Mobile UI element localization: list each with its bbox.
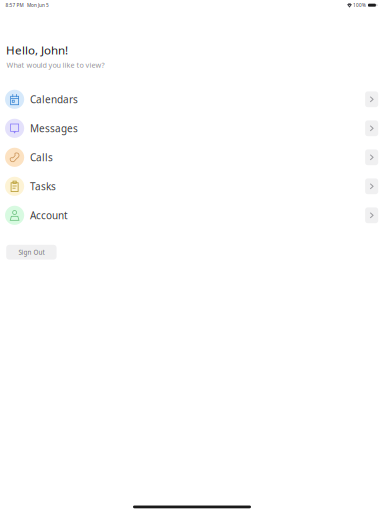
button[interactable]: Account [0, 201, 384, 230]
button[interactable]: Messages [0, 114, 384, 143]
staticText: Tasks [30, 179, 56, 193]
staticText: Hello, John! [6, 42, 68, 58]
staticText: Account [30, 208, 68, 222]
staticText: 8:57 PM [5, 2, 23, 8]
staticText: Calendars [30, 92, 78, 106]
button[interactable]: Sign Out [6, 245, 57, 260]
button[interactable]: Calendars [0, 85, 384, 114]
staticText: What would you like to view? [6, 60, 104, 70]
staticText: Mon Jun 5 [27, 2, 49, 8]
staticText: Sign Out [18, 248, 44, 256]
button[interactable]: Calls [0, 143, 384, 172]
button[interactable]: Tasks [0, 172, 384, 201]
staticText: 100% [353, 2, 366, 8]
staticText: Calls [30, 150, 53, 164]
staticText: Messages [30, 121, 78, 135]
